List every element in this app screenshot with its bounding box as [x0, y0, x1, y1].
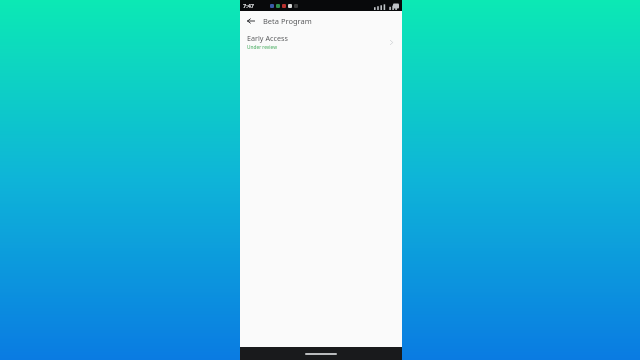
staticText: Early Access: [247, 33, 288, 43]
button[interactable]: Early Access: [240, 30, 402, 54]
button[interactable]: Back: [244, 14, 258, 28]
staticText: Beta Program: [263, 16, 312, 26]
staticText: Under review: [247, 44, 277, 51]
button[interactable]: Home gesture: [305, 353, 337, 355]
staticText: 7:47: [243, 2, 254, 9]
